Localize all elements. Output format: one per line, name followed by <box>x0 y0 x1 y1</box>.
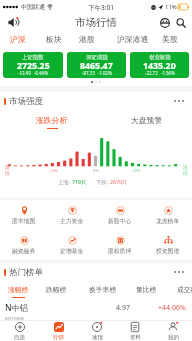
staticText: -5% <box>50 167 58 173</box>
staticText: 涨跌分析 <box>36 115 68 125</box>
staticText: 港股 <box>79 34 95 44</box>
staticText: 定增基金 <box>60 247 84 254</box>
staticText: -12.49 <box>18 70 31 76</box>
button[interactable]: 成交额 <box>175 281 192 300</box>
staticText: 热门榜单 <box>9 267 43 278</box>
staticText: 11% <box>165 3 177 11</box>
staticText: 主力资金 <box>60 217 84 224</box>
button[interactable]: 涨幅榜 <box>6 281 30 300</box>
button[interactable]: N中铝 <box>0 300 192 320</box>
staticText: 中国联通 <box>21 3 45 11</box>
button[interactable]: 自选 <box>0 321 39 341</box>
button[interactable]: 龙虎榜单 <box>144 200 192 230</box>
button[interactable]: 更多 <box>172 94 186 108</box>
button[interactable]: 换手率榜 <box>87 281 119 300</box>
staticText: 速报 <box>92 334 103 341</box>
button[interactable]: 新股中心 <box>96 200 144 230</box>
staticText: 4.97 <box>116 303 130 313</box>
staticText: 行情 <box>53 334 64 341</box>
button[interactable]: 更多 <box>172 265 186 279</box>
staticText: 涨 <box>183 164 188 170</box>
button[interactable]: 上证指数 <box>3 52 63 78</box>
staticText: 停 <box>5 170 10 176</box>
staticText: 深证成指 <box>86 54 108 61</box>
button[interactable]: 股市地图 <box>0 200 48 230</box>
button[interactable]: 涨跌分析 <box>34 110 70 130</box>
button[interactable]: 资料 <box>116 321 154 341</box>
staticText: 量比榜 <box>136 285 157 294</box>
staticText: 跌幅榜 <box>46 285 67 294</box>
staticText: -1.56% <box>161 70 175 76</box>
button[interactable]: 公告 <box>6 15 21 30</box>
staticText: 沪深港通 <box>117 34 149 44</box>
button[interactable]: 沪深 <box>7 31 29 47</box>
staticText: 719只 <box>72 178 87 185</box>
staticText: 涨幅榜 <box>8 285 29 294</box>
button[interactable]: 大盘预警 <box>129 110 165 130</box>
button[interactable]: 投资图谱 <box>144 230 192 260</box>
button[interactable]: 沪深港通 <box>116 31 150 47</box>
button[interactable]: 扫一扫 <box>157 15 172 30</box>
button[interactable]: 主力资金 <box>48 200 96 230</box>
staticText: 融资融券 <box>12 247 36 254</box>
staticText: 我的 <box>168 334 179 341</box>
button[interactable]: 我的 <box>154 321 192 341</box>
button[interactable]: 搜索 <box>173 15 188 30</box>
button[interactable]: 行情 <box>39 321 78 341</box>
staticText: 美股 <box>162 34 178 44</box>
staticText: 2670只 <box>110 178 128 185</box>
staticText: 成交额 <box>177 285 192 294</box>
staticText: 龙虎榜单 <box>156 217 180 224</box>
staticText: 下跌: <box>96 178 110 185</box>
staticText: 自选 <box>14 334 25 341</box>
staticText: -0.46% <box>34 70 48 76</box>
button[interactable]: 美股 <box>159 31 181 47</box>
button[interactable]: 港股 <box>76 31 98 47</box>
staticText: -87.33 <box>82 70 95 76</box>
staticText: 上涨: <box>58 178 72 185</box>
staticText: 沪深 <box>10 34 26 44</box>
staticText: 大盘预警 <box>131 115 163 125</box>
button[interactable]: 融资融券 <box>0 230 48 260</box>
staticText: 股权质押 <box>108 247 132 254</box>
button[interactable]: 板块 <box>43 31 65 47</box>
staticText: 0% <box>93 167 100 173</box>
staticText: -22.72 <box>145 70 158 76</box>
staticText: 股市地图 <box>12 217 36 224</box>
staticText: 上证指数 <box>22 54 44 61</box>
staticText: 资料 <box>130 334 141 341</box>
staticText: 下午3:01 <box>88 3 114 12</box>
staticText: 601068 <box>5 315 24 322</box>
button[interactable]: 跌幅榜 <box>44 281 68 300</box>
staticText: 换手率榜 <box>89 285 117 294</box>
staticText: 2725.25 <box>17 60 50 72</box>
staticText: 停 <box>183 170 188 176</box>
staticText: 新股中心 <box>108 217 132 224</box>
staticText: +5% <box>132 167 141 173</box>
staticText: N中铝 <box>5 302 29 314</box>
staticText: 市场强度 <box>9 96 43 107</box>
staticText: -1.02% <box>98 70 112 76</box>
button[interactable]: 量比榜 <box>134 281 158 300</box>
staticText: 创业板指 <box>149 54 171 61</box>
staticText: 投资图谱 <box>156 247 180 254</box>
staticText: 市场行情 <box>75 16 117 29</box>
button[interactable]: 速报 <box>78 321 116 341</box>
staticText: +44.06% <box>158 303 186 313</box>
button[interactable]: 创业板指 <box>130 52 189 78</box>
staticText: 1435.20 <box>143 60 176 72</box>
button[interactable]: 定增基金 <box>48 230 96 260</box>
button[interactable]: 股权质押 <box>96 230 144 260</box>
staticText: 8465.47 <box>80 60 113 72</box>
staticText: 跌 <box>5 164 10 170</box>
staticText: 板块 <box>46 34 62 44</box>
button[interactable]: 深证成指 <box>67 52 126 78</box>
